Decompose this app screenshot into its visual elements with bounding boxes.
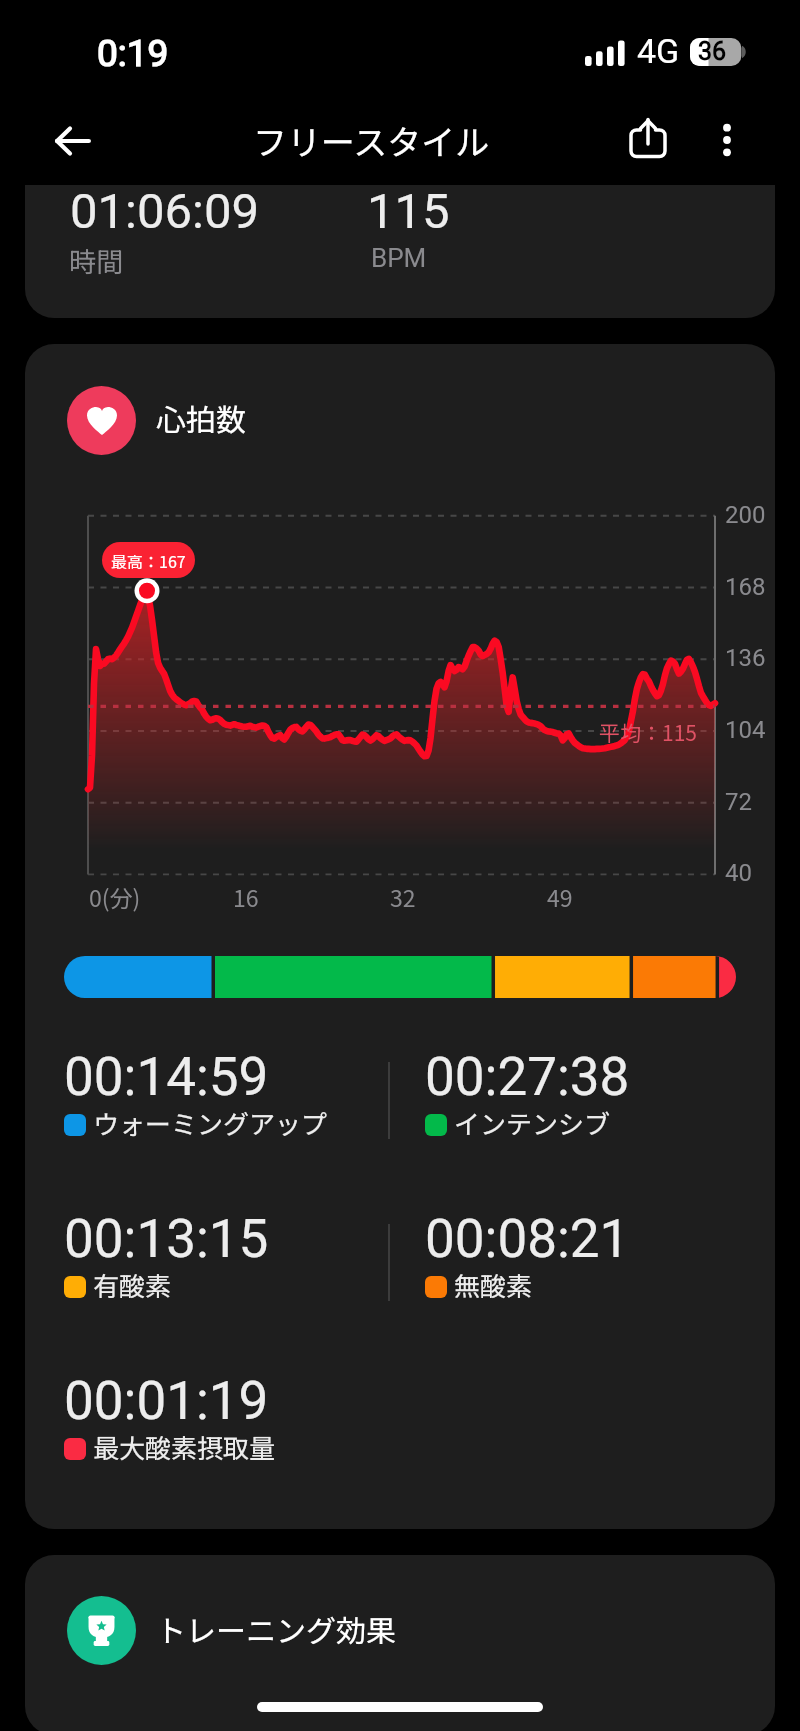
staticText: 49 xyxy=(547,880,573,913)
staticText: 最大酸素摂取量 xyxy=(93,1428,276,1466)
staticText: 4G xyxy=(637,31,680,71)
staticText: 最高：167 xyxy=(111,549,186,572)
button[interactable]: 心拍数 xyxy=(25,344,775,1529)
staticText: インテンシブ xyxy=(454,1104,611,1142)
staticText: 72 xyxy=(725,788,752,816)
staticText: 平均：115 xyxy=(599,717,697,747)
staticText: 01:06:09 xyxy=(70,185,259,240)
staticText: BPM xyxy=(371,243,427,273)
staticText: 00:01:19 xyxy=(64,1370,269,1432)
button[interactable]: トレーニング効果 xyxy=(25,1555,775,1731)
staticText: ウォーミングアップ xyxy=(93,1104,328,1142)
staticText: 0(分) xyxy=(89,880,141,913)
staticText: 115 xyxy=(367,185,450,240)
staticText: 00:27:38 xyxy=(425,1046,630,1108)
staticText: 36 xyxy=(698,37,727,65)
staticText: 有酸素 xyxy=(93,1266,172,1304)
staticText: 104 xyxy=(725,716,766,744)
staticText: 無酸素 xyxy=(454,1266,533,1304)
staticText: 200 xyxy=(725,501,766,529)
staticText: 40 xyxy=(725,859,752,887)
staticText: 16 xyxy=(233,880,259,913)
staticText: 32 xyxy=(390,880,416,913)
staticText: 00:13:15 xyxy=(64,1208,269,1270)
button[interactable]: Back xyxy=(44,112,102,170)
staticText: 時間 xyxy=(69,241,123,280)
staticText: 00:14:59 xyxy=(64,1046,269,1108)
staticText: トレーニング効果 xyxy=(156,1607,396,1650)
staticText: 心拍数 xyxy=(156,396,246,439)
staticText: 168 xyxy=(725,573,766,601)
staticText: 136 xyxy=(725,644,766,672)
button[interactable]: 01:06:09 xyxy=(25,185,775,318)
staticText: 00:08:21 xyxy=(425,1208,630,1270)
button[interactable]: More options xyxy=(698,111,756,169)
staticText: フリースタイル xyxy=(253,116,490,165)
button[interactable]: Share xyxy=(619,109,677,167)
staticText: 0:19 xyxy=(97,32,169,75)
